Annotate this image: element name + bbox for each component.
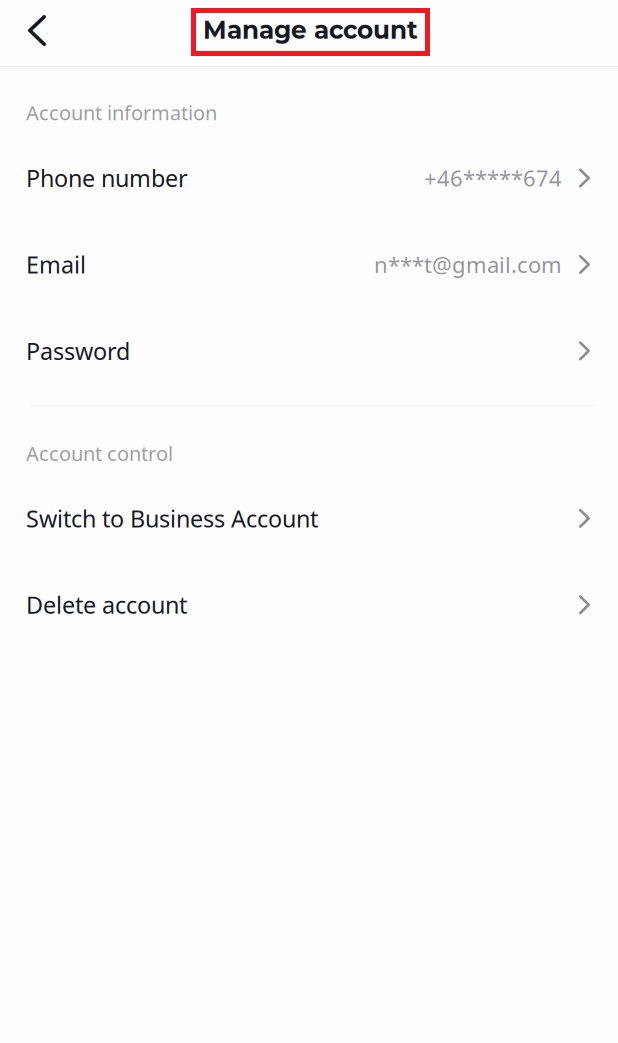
button[interactable]: Email xyxy=(0,221,618,308)
button[interactable]: Password xyxy=(0,308,618,394)
staticText: Delete account xyxy=(26,589,187,621)
button[interactable]: Delete account xyxy=(0,561,618,648)
staticText: Manage account xyxy=(203,15,418,45)
staticText: Email xyxy=(26,249,86,280)
staticText: Phone number xyxy=(26,162,188,194)
staticText: Account control xyxy=(26,439,173,467)
button[interactable]: Phone number xyxy=(0,135,618,221)
staticText: Password xyxy=(26,335,130,367)
button[interactable]: Switch to Business Account xyxy=(0,475,618,561)
staticText: n***t@gmail.com xyxy=(374,249,562,279)
button[interactable]: Back xyxy=(9,0,65,60)
staticText: Account information xyxy=(26,99,217,126)
staticText: Switch to Business Account xyxy=(26,502,318,534)
staticText: +46*****674 xyxy=(424,163,562,193)
